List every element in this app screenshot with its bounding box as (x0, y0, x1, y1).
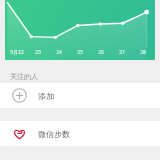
other: 添加 (12, 88, 27, 103)
button[interactable]: 5月22 (5, 0, 155, 60)
button[interactable]: 添加 (0, 83, 160, 108)
staticText: 关注的人 (10, 72, 38, 81)
staticText: 27 (119, 49, 125, 56)
staticText: 5月22 (10, 49, 24, 56)
staticText: 26 (98, 49, 104, 56)
staticText: 微信步数 (38, 129, 70, 139)
staticText: 23 (35, 49, 41, 56)
staticText: 28 (140, 49, 146, 56)
staticText: 24 (56, 49, 62, 56)
staticText: 添加 (38, 91, 54, 101)
staticText: 25 (77, 49, 83, 56)
other: 微信步数 (12, 126, 27, 141)
button[interactable]: 微信步数 (0, 121, 160, 146)
